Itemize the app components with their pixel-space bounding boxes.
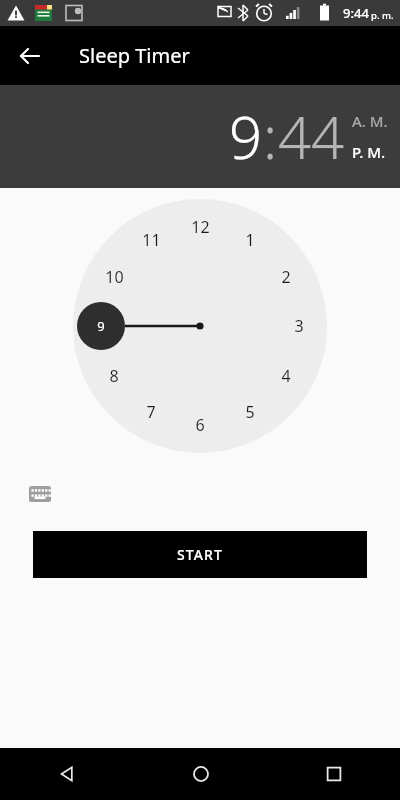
button[interactable]: Switch to text input bbox=[22, 476, 58, 512]
button[interactable]: Back bbox=[0, 748, 134, 800]
button[interactable]: 10 bbox=[97, 263, 131, 291]
staticText: 8 bbox=[109, 365, 119, 387]
button[interactable]: 2 bbox=[269, 263, 303, 291]
staticText: : bbox=[263, 97, 278, 176]
button[interactable]: 12 bbox=[183, 213, 217, 241]
button[interactable]: 44 bbox=[278, 97, 345, 176]
staticText: 2 bbox=[281, 266, 291, 288]
staticText: P. M. bbox=[352, 142, 386, 162]
button[interactable]: A. M. bbox=[352, 109, 388, 133]
staticText: 44 bbox=[278, 97, 345, 176]
staticText: START bbox=[177, 545, 223, 564]
button[interactable]: 1 bbox=[233, 226, 267, 254]
staticText: p. m. bbox=[371, 9, 394, 22]
staticText: A. M. bbox=[352, 111, 388, 131]
staticText: 7 bbox=[146, 401, 156, 423]
button[interactable]: 3 bbox=[282, 312, 316, 340]
button[interactable]: Navigate up bbox=[9, 35, 51, 77]
staticText: 9:44 bbox=[343, 4, 369, 22]
button[interactable]: P. M. bbox=[352, 140, 386, 164]
staticText: 3 bbox=[294, 315, 304, 337]
staticText: 9 bbox=[229, 97, 263, 176]
button[interactable]: 8 bbox=[97, 362, 131, 390]
button[interactable]: 5 bbox=[233, 398, 267, 426]
button[interactable]: 4 bbox=[269, 362, 303, 390]
staticText: 6 bbox=[195, 414, 205, 436]
button[interactable]: START bbox=[33, 531, 367, 578]
button[interactable]: 9 bbox=[84, 312, 118, 340]
staticText: 11 bbox=[142, 229, 161, 251]
button[interactable]: 11 bbox=[134, 226, 168, 254]
staticText: 4 bbox=[281, 365, 291, 387]
button[interactable]: Recent apps bbox=[267, 748, 400, 800]
button[interactable]: 6 bbox=[183, 411, 217, 439]
staticText: 5 bbox=[245, 401, 255, 423]
staticText: 10 bbox=[105, 266, 124, 288]
button[interactable]: 9 bbox=[229, 97, 263, 176]
staticText: 9 bbox=[97, 317, 105, 335]
staticText: 1 bbox=[245, 229, 255, 251]
staticText: 12 bbox=[191, 216, 210, 238]
button[interactable]: 7 bbox=[134, 398, 168, 426]
staticText: Sleep Timer bbox=[79, 42, 190, 69]
button[interactable]: Home bbox=[134, 748, 267, 800]
